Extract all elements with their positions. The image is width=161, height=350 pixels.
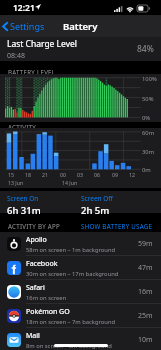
staticText: 58m on screen – 1m background: [26, 246, 116, 254]
staticText: 0%: [142, 114, 151, 122]
staticText: Settings: [10, 20, 45, 32]
staticText: 0m: [142, 166, 151, 174]
staticText: Mail: [26, 331, 40, 341]
staticText: 21: [42, 171, 48, 178]
staticText: 47m: [138, 263, 153, 273]
staticText: 84%: [137, 43, 154, 55]
staticText: Last Charge Level: [7, 38, 78, 50]
button[interactable]: Last Charge Level: [0, 37, 161, 61]
staticText: 18m on screen – 7m background: [26, 318, 116, 326]
staticText: 12: [129, 171, 135, 178]
staticText: 50%: [142, 95, 154, 103]
staticText: 15: [8, 171, 14, 178]
staticText: 09: [112, 171, 118, 178]
staticText: 00: [60, 171, 66, 178]
button[interactable]: SHOW BATTERY USAGE: [81, 222, 161, 230]
staticText: 16m on screen: [26, 294, 67, 302]
staticText: 06: [94, 171, 100, 178]
staticText: 10m: [138, 335, 153, 345]
staticText: 12:21: [13, 2, 35, 14]
staticText: 25m: [138, 311, 153, 321]
staticText: 6h 31m: [7, 204, 41, 216]
staticText: 8m on screen – 3m background: [26, 342, 112, 350]
staticText: 18: [25, 171, 31, 178]
staticText: 100%: [142, 75, 157, 83]
staticText: 59m: [138, 239, 153, 249]
button[interactable]: Settings: [0, 17, 53, 35]
staticText: 30m: [142, 148, 155, 156]
staticText: ACTIVITY: [8, 123, 37, 131]
staticText: 13 Jun: [8, 179, 24, 186]
staticText: BATTERY LEVEL: [8, 68, 56, 76]
staticText: 60m: [142, 129, 155, 137]
staticText: Pokémon GO: [26, 307, 70, 317]
staticText: 14 Jun: [62, 179, 78, 186]
staticText: Safari: [26, 283, 45, 293]
staticText: Apollo: [26, 235, 47, 245]
staticText: Battery: [63, 20, 98, 33]
staticText: 16m: [138, 287, 153, 297]
staticText: 2h 5m: [81, 204, 110, 216]
staticText: 30m on screen – 17m background: [26, 270, 119, 278]
staticText: Screen Off: [81, 194, 113, 203]
button[interactable]: Pokémon GO: [0, 304, 161, 328]
button[interactable]: Apollo: [0, 232, 161, 256]
staticText: Facebook: [26, 259, 58, 269]
staticText: Screen On: [7, 194, 39, 203]
staticText: ACTIVITY BY APP: [8, 222, 60, 230]
staticText: 03: [77, 171, 83, 178]
button[interactable]: Facebook: [0, 256, 161, 280]
button[interactable]: Mail: [0, 328, 161, 350]
button[interactable]: Safari: [0, 280, 161, 304]
staticText: 08:48: [7, 51, 25, 61]
